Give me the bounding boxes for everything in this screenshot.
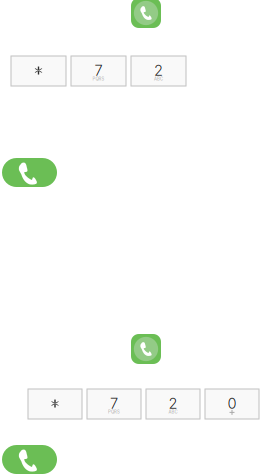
button[interactable]: Call xyxy=(2,158,57,187)
staticText: 7 xyxy=(94,61,102,79)
staticText: 2 xyxy=(154,61,163,79)
button[interactable] xyxy=(28,389,82,419)
button[interactable]: 7 xyxy=(71,56,126,86)
button[interactable]: 2 xyxy=(131,56,186,86)
button[interactable]: 0 xyxy=(205,389,259,419)
staticText: ABC xyxy=(168,409,177,414)
staticText: PQRS xyxy=(108,409,120,414)
staticText: 2 xyxy=(168,394,177,412)
button[interactable]: 7 xyxy=(87,389,141,419)
staticText: ABC xyxy=(154,76,163,81)
button[interactable]: 2 xyxy=(146,389,200,419)
staticText: PQRS xyxy=(92,76,104,81)
button[interactable] xyxy=(11,56,66,86)
staticText: 7 xyxy=(110,394,118,412)
staticText: 0 xyxy=(227,395,236,412)
button[interactable]: Call xyxy=(2,445,57,474)
